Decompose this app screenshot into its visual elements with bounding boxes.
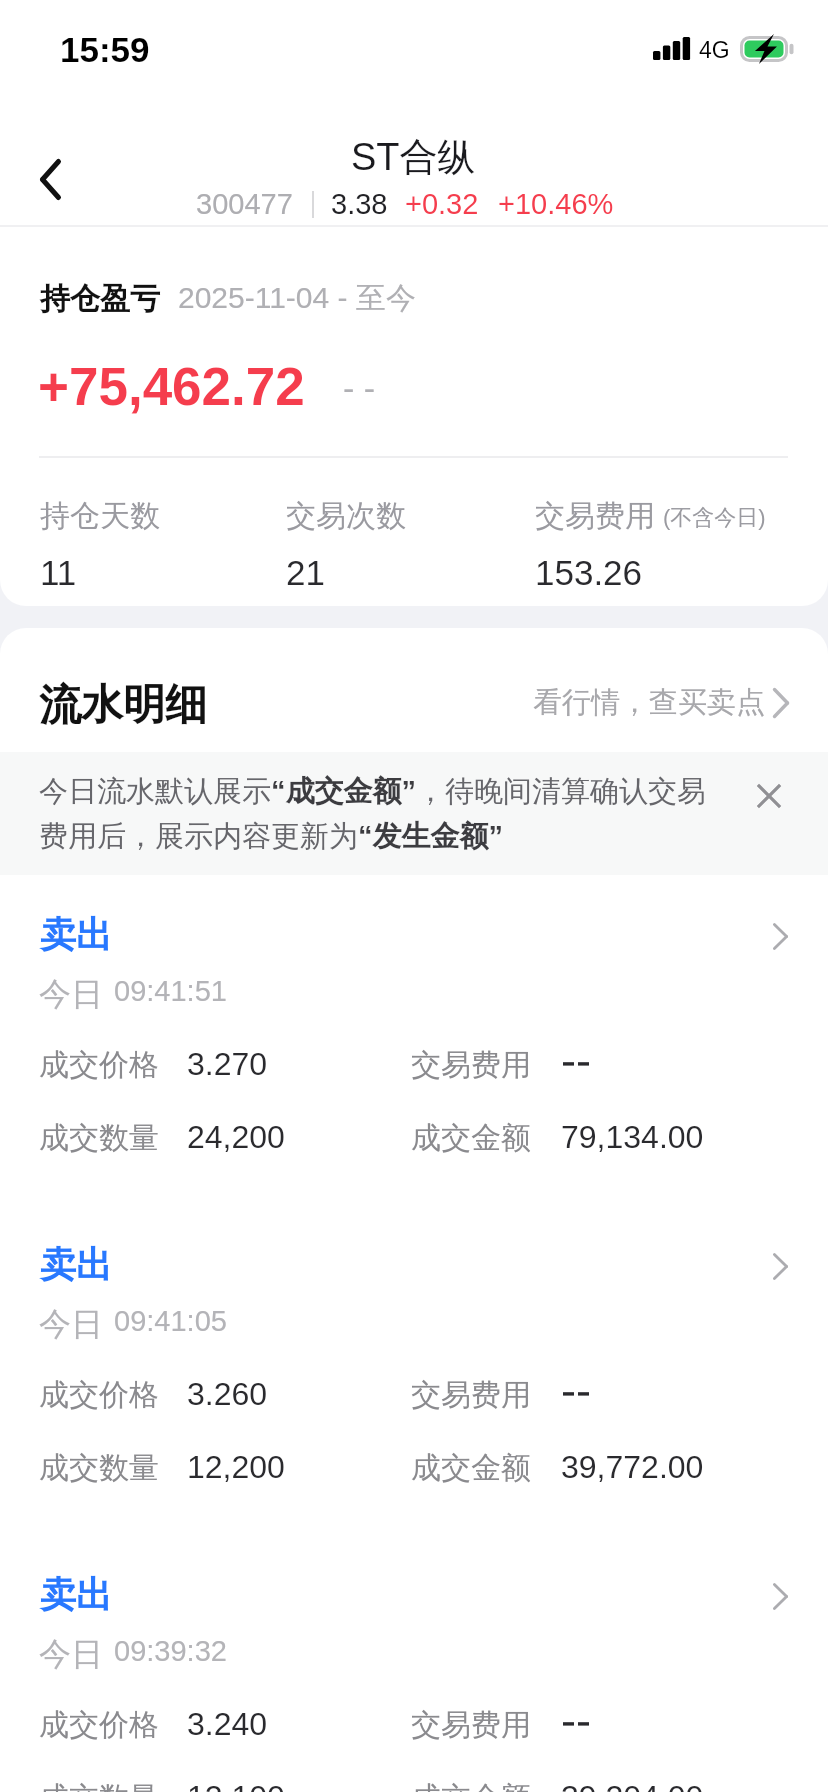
staticText: 09:41:51 — [114, 975, 227, 1007]
staticText: (不含今日) — [663, 504, 766, 532]
staticText: 卖出 — [40, 1242, 112, 1287]
staticText: 成交金额 — [411, 1119, 531, 1157]
other: Open trade detail — [753, 897, 808, 949]
staticText: 成交价格 — [39, 1376, 159, 1414]
staticText: 39,772.00 — [561, 1449, 704, 1485]
staticText: 300477 — [196, 188, 293, 220]
staticText: 持仓盈亏 — [40, 280, 160, 318]
staticText: 今日 — [39, 1304, 103, 1344]
staticText: 流水明细 — [39, 679, 207, 732]
staticText: 153.26 — [535, 553, 643, 592]
staticText: 15:59 — [60, 30, 150, 69]
staticText: 3.260 — [187, 1376, 268, 1412]
staticText: 4G — [699, 37, 730, 63]
staticText: 交易费用 — [411, 1706, 531, 1744]
staticText: 交易费用 — [411, 1046, 531, 1084]
other: Open trade detail — [753, 1227, 808, 1279]
staticText: 成交数量 — [39, 1119, 159, 1157]
staticText: 12,200 — [187, 1449, 285, 1485]
button[interactable]: Back — [16, 142, 88, 216]
staticText: 成交数量 — [39, 1779, 159, 1792]
staticText: 21 — [286, 553, 325, 592]
staticText: 11 — [40, 553, 77, 592]
staticText: 卖出 — [40, 1572, 112, 1617]
staticText: 交易费用 — [411, 1376, 531, 1414]
staticText: +75,462.72 — [38, 357, 305, 416]
staticText: 卖出 — [40, 912, 112, 957]
button[interactable]: 卖出 — [0, 875, 828, 1205]
staticText: 看行情，查买卖点 — [533, 684, 765, 721]
staticText: 持仓天数 — [40, 497, 160, 535]
staticText: 今日 — [39, 1634, 103, 1674]
button[interactable]: Close notice — [744, 771, 794, 821]
staticText: 24,200 — [187, 1119, 285, 1155]
staticText: 交易费用 — [535, 497, 655, 535]
staticText: 3.240 — [187, 1706, 268, 1742]
staticText: 3.38 — [331, 188, 388, 220]
staticText: +10.46% — [498, 188, 614, 220]
staticText: 3.270 — [187, 1046, 268, 1082]
staticText: 2025-11-04 - 至今 — [178, 279, 416, 317]
staticText: 成交价格 — [39, 1046, 159, 1084]
staticText: 成交价格 — [39, 1706, 159, 1744]
staticText: 39,204.00 — [561, 1779, 704, 1792]
staticText: 成交金额 — [411, 1449, 531, 1487]
other: Open trade detail — [753, 1557, 808, 1609]
button[interactable]: 卖出 — [0, 1205, 828, 1535]
staticText: 12,100 — [187, 1779, 285, 1792]
staticText: - - — [343, 369, 376, 407]
staticText: +0.32 — [405, 188, 479, 220]
staticText: 费用后，展示内容更新为“发生金额” — [39, 818, 503, 855]
staticText: 交易次数 — [286, 497, 406, 535]
staticText: 79,134.00 — [561, 1119, 704, 1155]
staticText: 成交金额 — [411, 1779, 531, 1792]
staticText: 今日流水默认展示“成交金额”，待晚间清算确认交易 — [39, 773, 706, 810]
staticText: 成交数量 — [39, 1449, 159, 1487]
button[interactable]: 卖出 — [0, 1535, 828, 1792]
staticText: 09:39:32 — [114, 1635, 227, 1667]
staticText: ST合纵 — [351, 133, 476, 181]
staticText: 今日 — [39, 974, 103, 1014]
button[interactable]: 看行情，查买卖点 — [0, 684, 789, 721]
staticText: 09:41:05 — [114, 1305, 227, 1337]
